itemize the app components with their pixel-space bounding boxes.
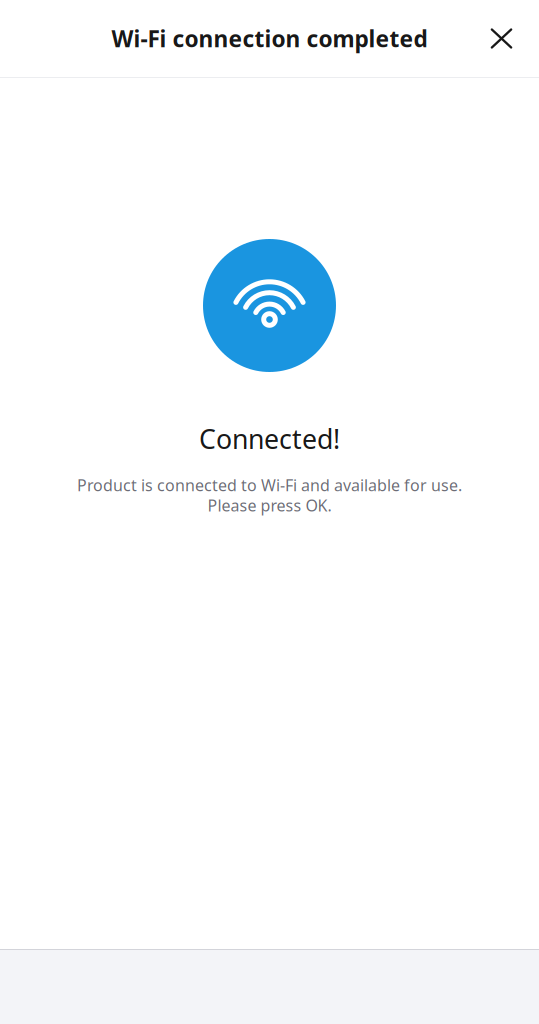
staticText: Wi-Fi connection completed bbox=[111, 23, 427, 53]
staticText: Connected! bbox=[199, 421, 340, 456]
button[interactable]: Close bbox=[473, 10, 529, 66]
staticText: Please press OK. bbox=[207, 495, 331, 516]
staticText: Product is connected to Wi-Fi and availa… bbox=[77, 474, 462, 496]
